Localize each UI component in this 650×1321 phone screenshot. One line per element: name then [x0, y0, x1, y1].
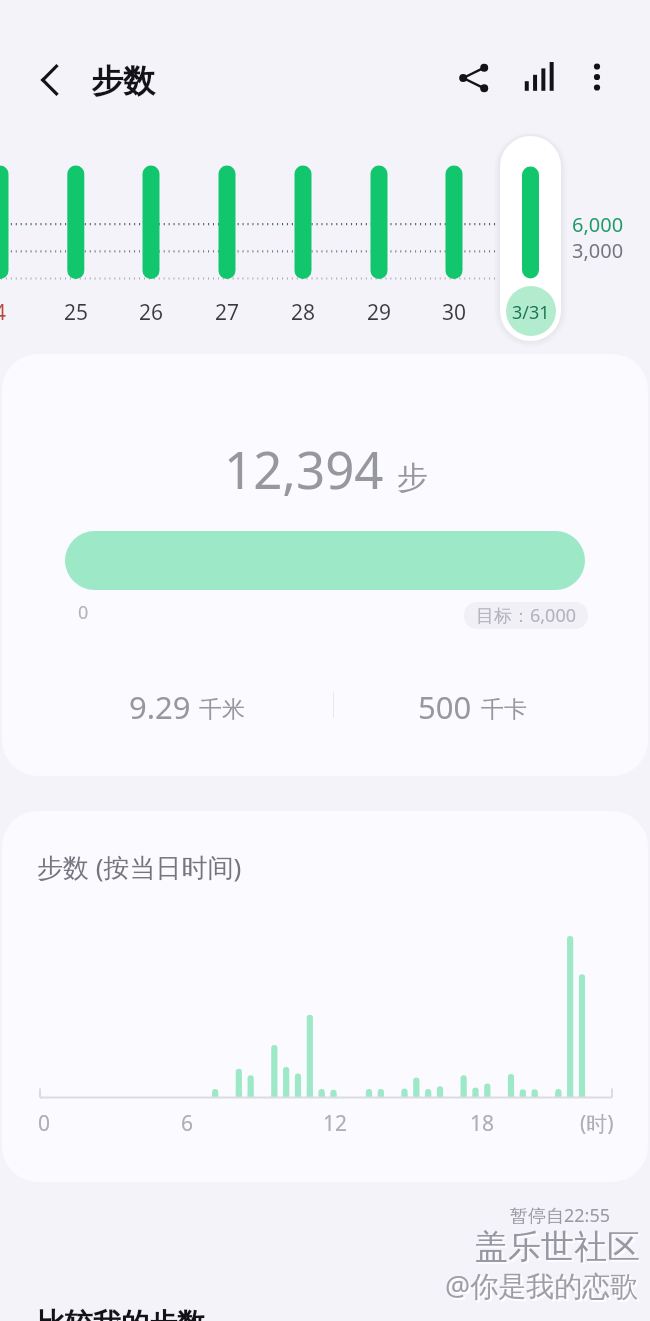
staticText: @你是我的恋歌 — [447, 1268, 641, 1306]
staticText: @你是我的恋歌 — [445, 1266, 639, 1304]
staticText: 0 — [78, 600, 89, 625]
button[interactable]: Share — [446, 50, 502, 106]
button[interactable]: Steps by time of day chart — [2, 811, 648, 1182]
staticText: 500 — [418, 686, 472, 728]
button[interactable]: Back — [22, 51, 79, 108]
staticText: 6 — [181, 1109, 194, 1138]
staticText: 18 — [470, 1109, 495, 1138]
staticText: 目标：6,000 — [476, 603, 577, 628]
staticText: 0 — [38, 1109, 51, 1138]
staticText: 27 — [215, 298, 240, 327]
staticText: 30 — [442, 298, 467, 327]
button[interactable]: More options — [569, 49, 625, 105]
staticText: 盖乐世社区 — [477, 1228, 642, 1270]
staticText: 29 — [367, 298, 392, 327]
staticText: 3,000 — [572, 237, 624, 264]
staticText: 12,394 — [224, 434, 384, 503]
staticText: 步 — [397, 458, 428, 497]
staticText: (时) — [580, 1109, 614, 1138]
staticText: 4 — [0, 298, 7, 327]
staticText: 盖乐世社区 — [475, 1226, 640, 1268]
staticText: 25 — [64, 298, 89, 327]
button[interactable]: Daily step summary — [2, 354, 648, 776]
button[interactable] — [500, 136, 561, 341]
staticText: 28 — [291, 298, 316, 327]
staticText: 12 — [323, 1109, 348, 1138]
staticText: 3/31 — [512, 300, 550, 325]
staticText: 9.29 — [129, 686, 191, 728]
button[interactable]: Trends — [511, 50, 567, 106]
staticText: 步数 (按当日时间) — [37, 849, 242, 885]
staticText: 千卡 — [481, 695, 527, 724]
staticText: 千米 — [199, 695, 245, 724]
staticText: 步数 — [91, 61, 155, 101]
staticText: 26 — [139, 298, 164, 327]
staticText: 暂停自22:55 — [510, 1203, 611, 1228]
staticText: 6,000 — [572, 211, 624, 238]
staticText: 比较我的步数 — [37, 1306, 205, 1321]
